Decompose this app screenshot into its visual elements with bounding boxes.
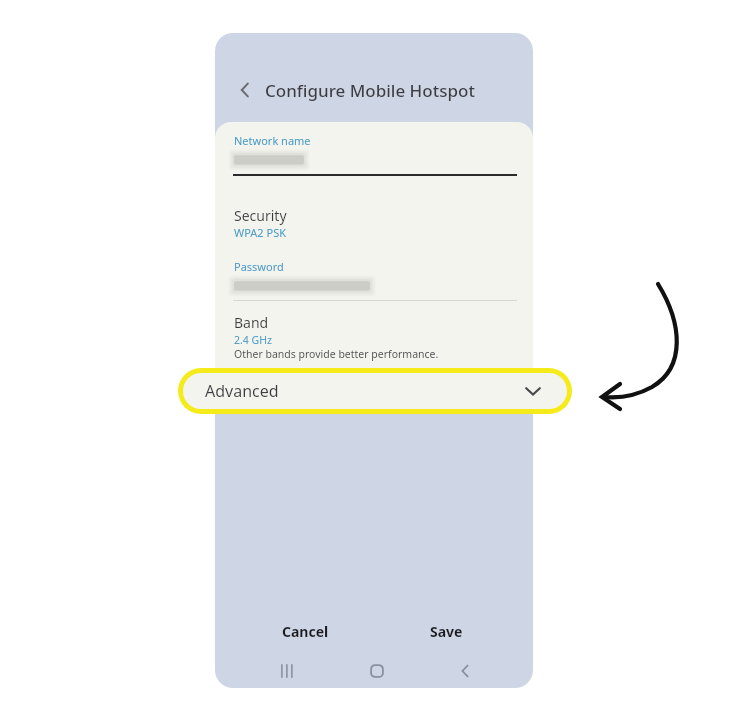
staticText: Password: [234, 259, 284, 274]
staticText: Network name: [234, 133, 311, 148]
staticText: WPA2 PSK: [234, 225, 287, 240]
staticText: Security: [234, 206, 287, 225]
staticText: Band: [234, 313, 269, 332]
button[interactable]: Save: [402, 613, 490, 649]
staticText: 2.4 GHz: [234, 333, 272, 347]
staticText: Save: [430, 622, 463, 641]
staticText: Advanced: [205, 380, 279, 402]
button[interactable]: Home: [356, 650, 398, 692]
button[interactable]: Back: [444, 650, 486, 692]
staticText: Configure Mobile Hotspot: [265, 79, 475, 102]
button[interactable]: Back: [231, 76, 259, 104]
button[interactable]: Cancel: [257, 613, 353, 649]
staticText: Cancel: [282, 622, 329, 641]
staticText: Other bands provide better performance.: [234, 347, 439, 361]
button[interactable]: Recent apps: [266, 650, 308, 692]
button[interactable]: Advanced: [178, 368, 572, 414]
